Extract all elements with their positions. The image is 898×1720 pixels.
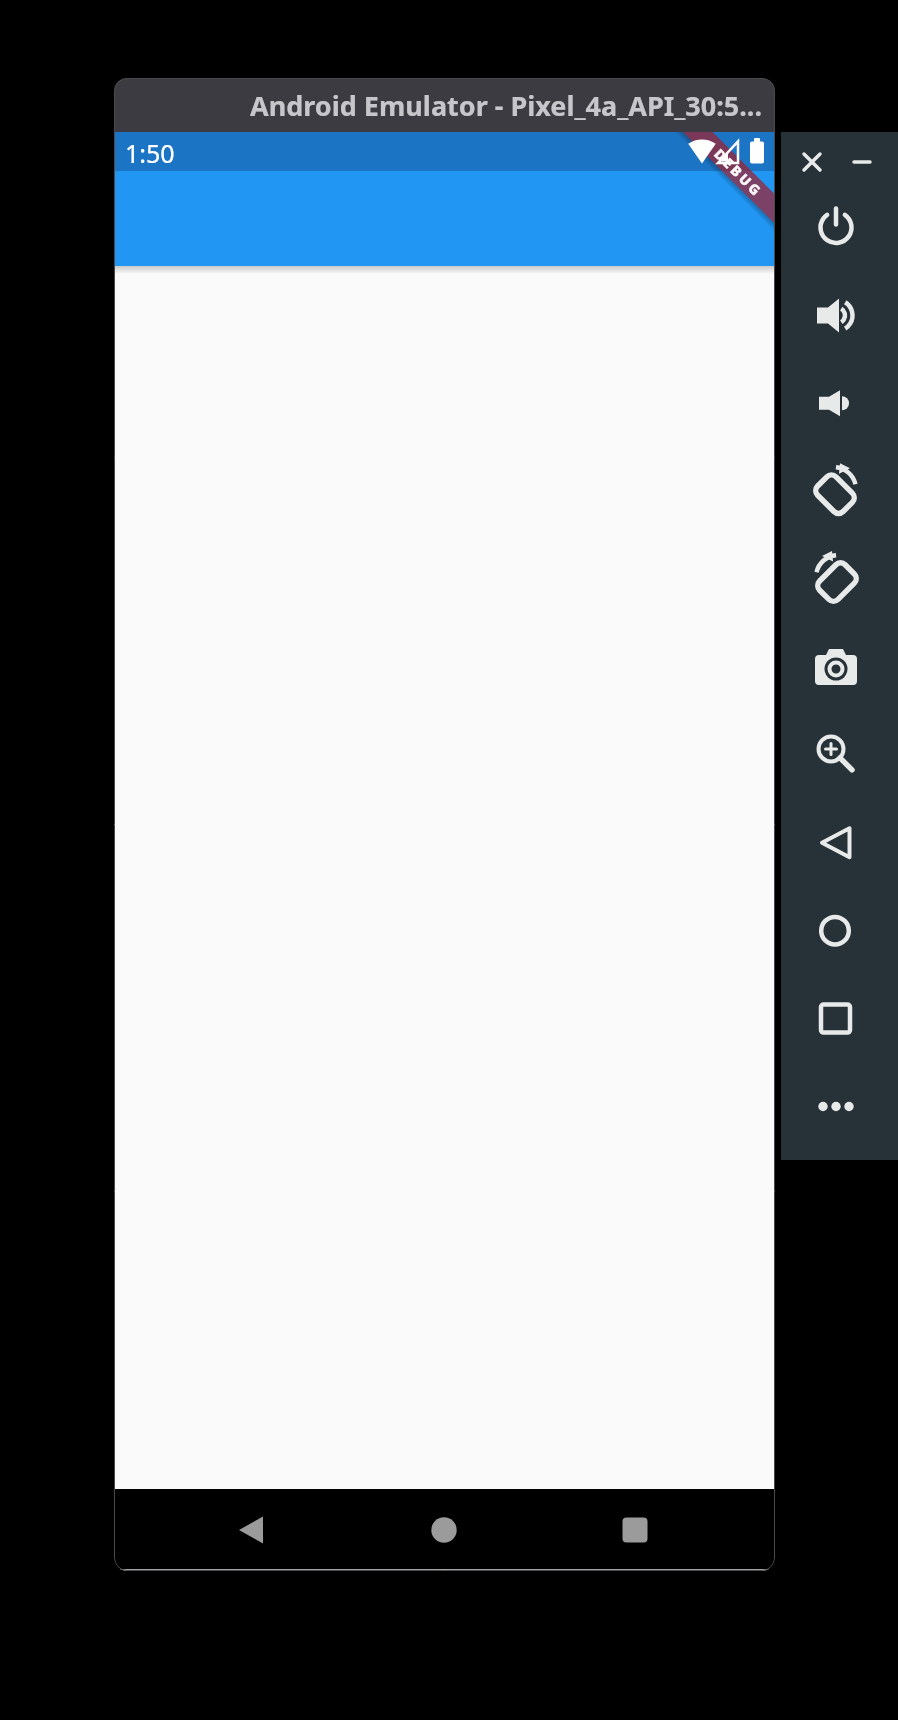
button[interactable] [114, 171, 775, 266]
button[interactable] [781, 132, 839, 192]
button[interactable] [781, 801, 898, 888]
button[interactable] [781, 192, 898, 279]
button[interactable] [555, 1489, 775, 1571]
staticText: DEBUG [710, 144, 767, 201]
button[interactable] [781, 279, 898, 366]
button[interactable] [114, 1489, 335, 1571]
button[interactable]: Android Emulator - Pixel_4a_API_30:5... [114, 78, 775, 132]
button[interactable] [839, 132, 898, 192]
staticText: 1:50 [125, 136, 175, 170]
button[interactable] [781, 714, 898, 801]
button[interactable] [781, 366, 898, 453]
button[interactable] [781, 975, 898, 1062]
button[interactable] [335, 1489, 555, 1571]
button[interactable] [781, 1062, 898, 1149]
button[interactable] [781, 540, 898, 627]
staticText: Android Emulator - Pixel_4a_API_30:5... [250, 87, 763, 124]
button[interactable] [781, 888, 898, 975]
button[interactable] [781, 453, 898, 540]
button[interactable] [781, 627, 898, 714]
